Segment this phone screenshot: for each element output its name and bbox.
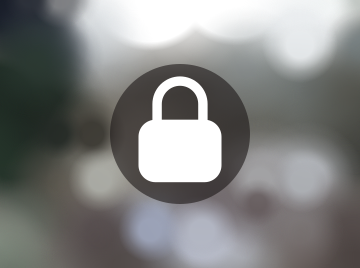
button[interactable]: Locked — [110, 64, 250, 204]
